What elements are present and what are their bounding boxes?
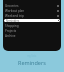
button[interactable]: Archive bbox=[3, 33, 61, 38]
button[interactable]: Workout plan bbox=[3, 8, 61, 13]
staticText: my lists bbox=[27, 54, 37, 58]
staticText: Reminders bbox=[6, 19, 20, 22]
button[interactable]: Groceries bbox=[3, 3, 61, 8]
staticText: Reminders bbox=[18, 59, 46, 66]
staticText: Groceries bbox=[5, 4, 19, 8]
staticText: Archive bbox=[5, 34, 16, 38]
button[interactable]: Weekend trip bbox=[3, 13, 61, 18]
button[interactable]: Projects bbox=[3, 28, 61, 33]
staticText: Shopping bbox=[5, 24, 19, 28]
staticText: Projects bbox=[5, 29, 17, 33]
staticText: Weekend trip bbox=[5, 14, 24, 18]
staticText: Workout plan bbox=[5, 9, 25, 13]
button[interactable]: Reminders bbox=[4, 19, 60, 22]
button[interactable]: Shopping bbox=[3, 23, 61, 28]
